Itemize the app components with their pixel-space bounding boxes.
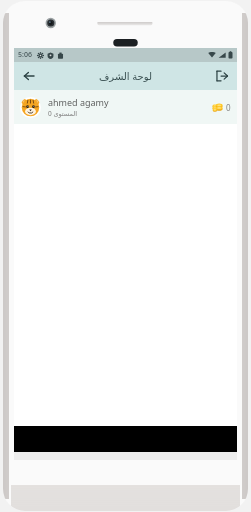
staticText: ahmed agamy [48,96,109,108]
staticText: 0 [226,102,231,113]
staticText: 5:06 [18,50,32,60]
button[interactable]: Logout [211,65,233,87]
button[interactable]: Back [18,65,40,87]
staticText: لوحة الشرف [99,69,152,83]
button[interactable]: ahmed agamy [14,90,237,124]
staticText: المستوى 0 [48,109,78,118]
